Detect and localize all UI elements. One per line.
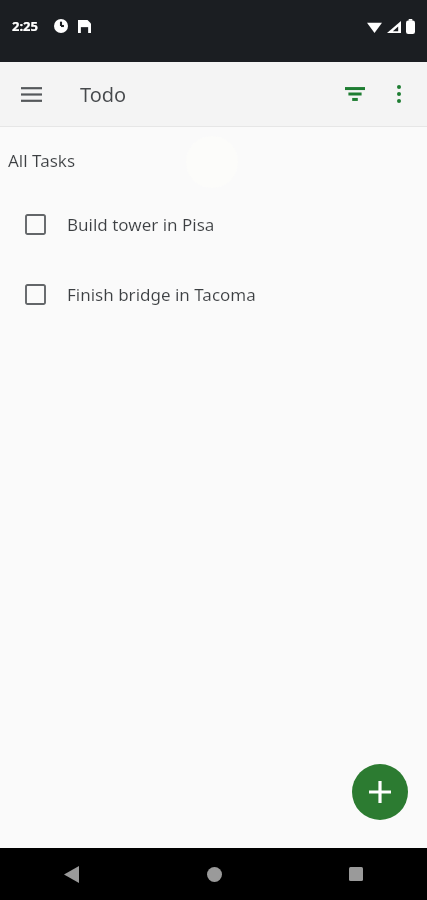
staticText: All Tasks [8,149,76,172]
button[interactable]: Back [0,848,143,900]
button[interactable]: Finish bridge in Tacoma [0,259,427,329]
staticText: Build tower in Pisa [67,213,215,236]
button[interactable]: Open navigation menu [7,70,55,118]
staticText: Finish bridge in Tacoma [67,283,256,306]
button[interactable]: More options [375,70,423,118]
staticText: Todo [80,81,127,108]
button[interactable]: Filter tasks [331,70,379,118]
button[interactable]: Home [143,848,285,900]
button[interactable]: Add task [352,764,408,820]
button[interactable]: Recent apps [285,848,427,900]
staticText: 2:25 [12,17,38,35]
button[interactable]: Build tower in Pisa [0,189,427,259]
